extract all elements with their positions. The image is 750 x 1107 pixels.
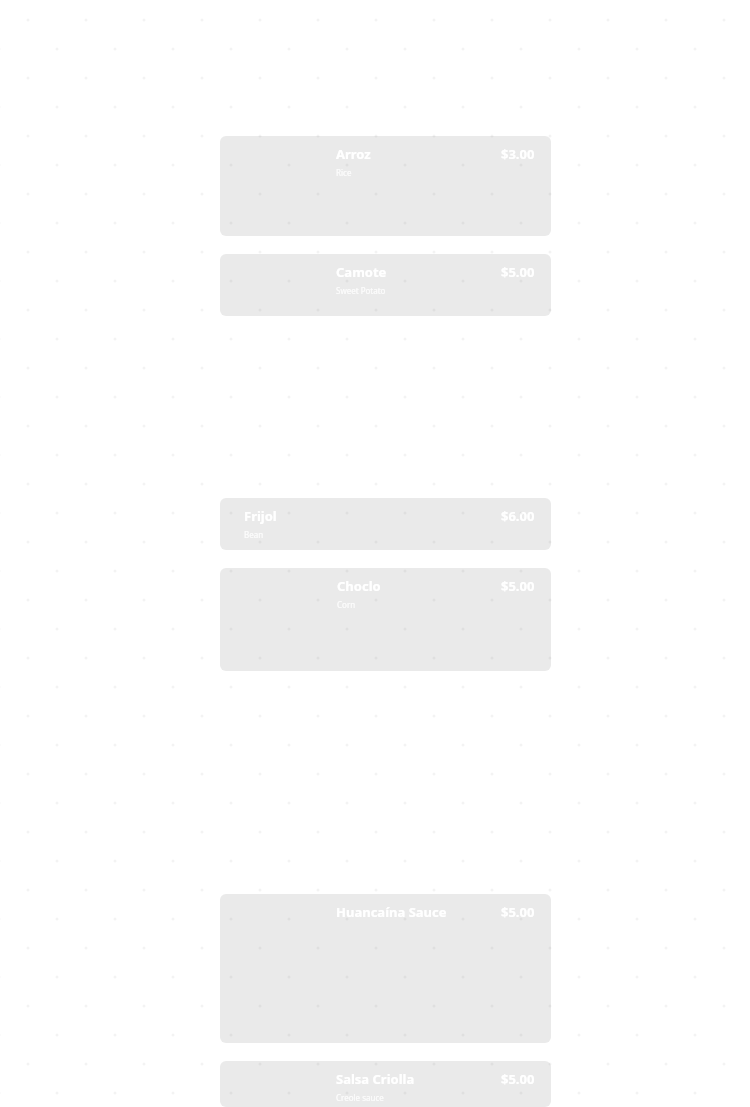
staticText: $5.00 — [501, 1070, 535, 1088]
staticText: $5.00 — [501, 577, 535, 595]
staticText: Choclo — [337, 577, 381, 595]
staticText: Camote — [336, 263, 387, 281]
staticText: Creole sauce — [336, 1092, 384, 1103]
staticText: Salsa Criolla — [336, 1070, 415, 1088]
staticText: Rice — [336, 167, 352, 178]
button[interactable]: Frijol — [220, 498, 551, 550]
staticText: $5.00 — [501, 263, 535, 281]
staticText: $6.00 — [501, 507, 535, 525]
staticText: Sweet Potato — [336, 285, 386, 296]
staticText: Frijol — [244, 507, 277, 525]
staticText: $5.00 — [501, 903, 535, 921]
button[interactable]: Camote — [220, 254, 551, 316]
staticText: Corn — [337, 599, 356, 610]
staticText: Huancaína Sauce — [336, 903, 447, 921]
staticText: Bean — [244, 529, 264, 540]
button[interactable]: Salsa Criolla — [220, 1061, 551, 1107]
staticText: $3.00 — [501, 145, 535, 163]
staticText: Arroz — [336, 145, 371, 163]
